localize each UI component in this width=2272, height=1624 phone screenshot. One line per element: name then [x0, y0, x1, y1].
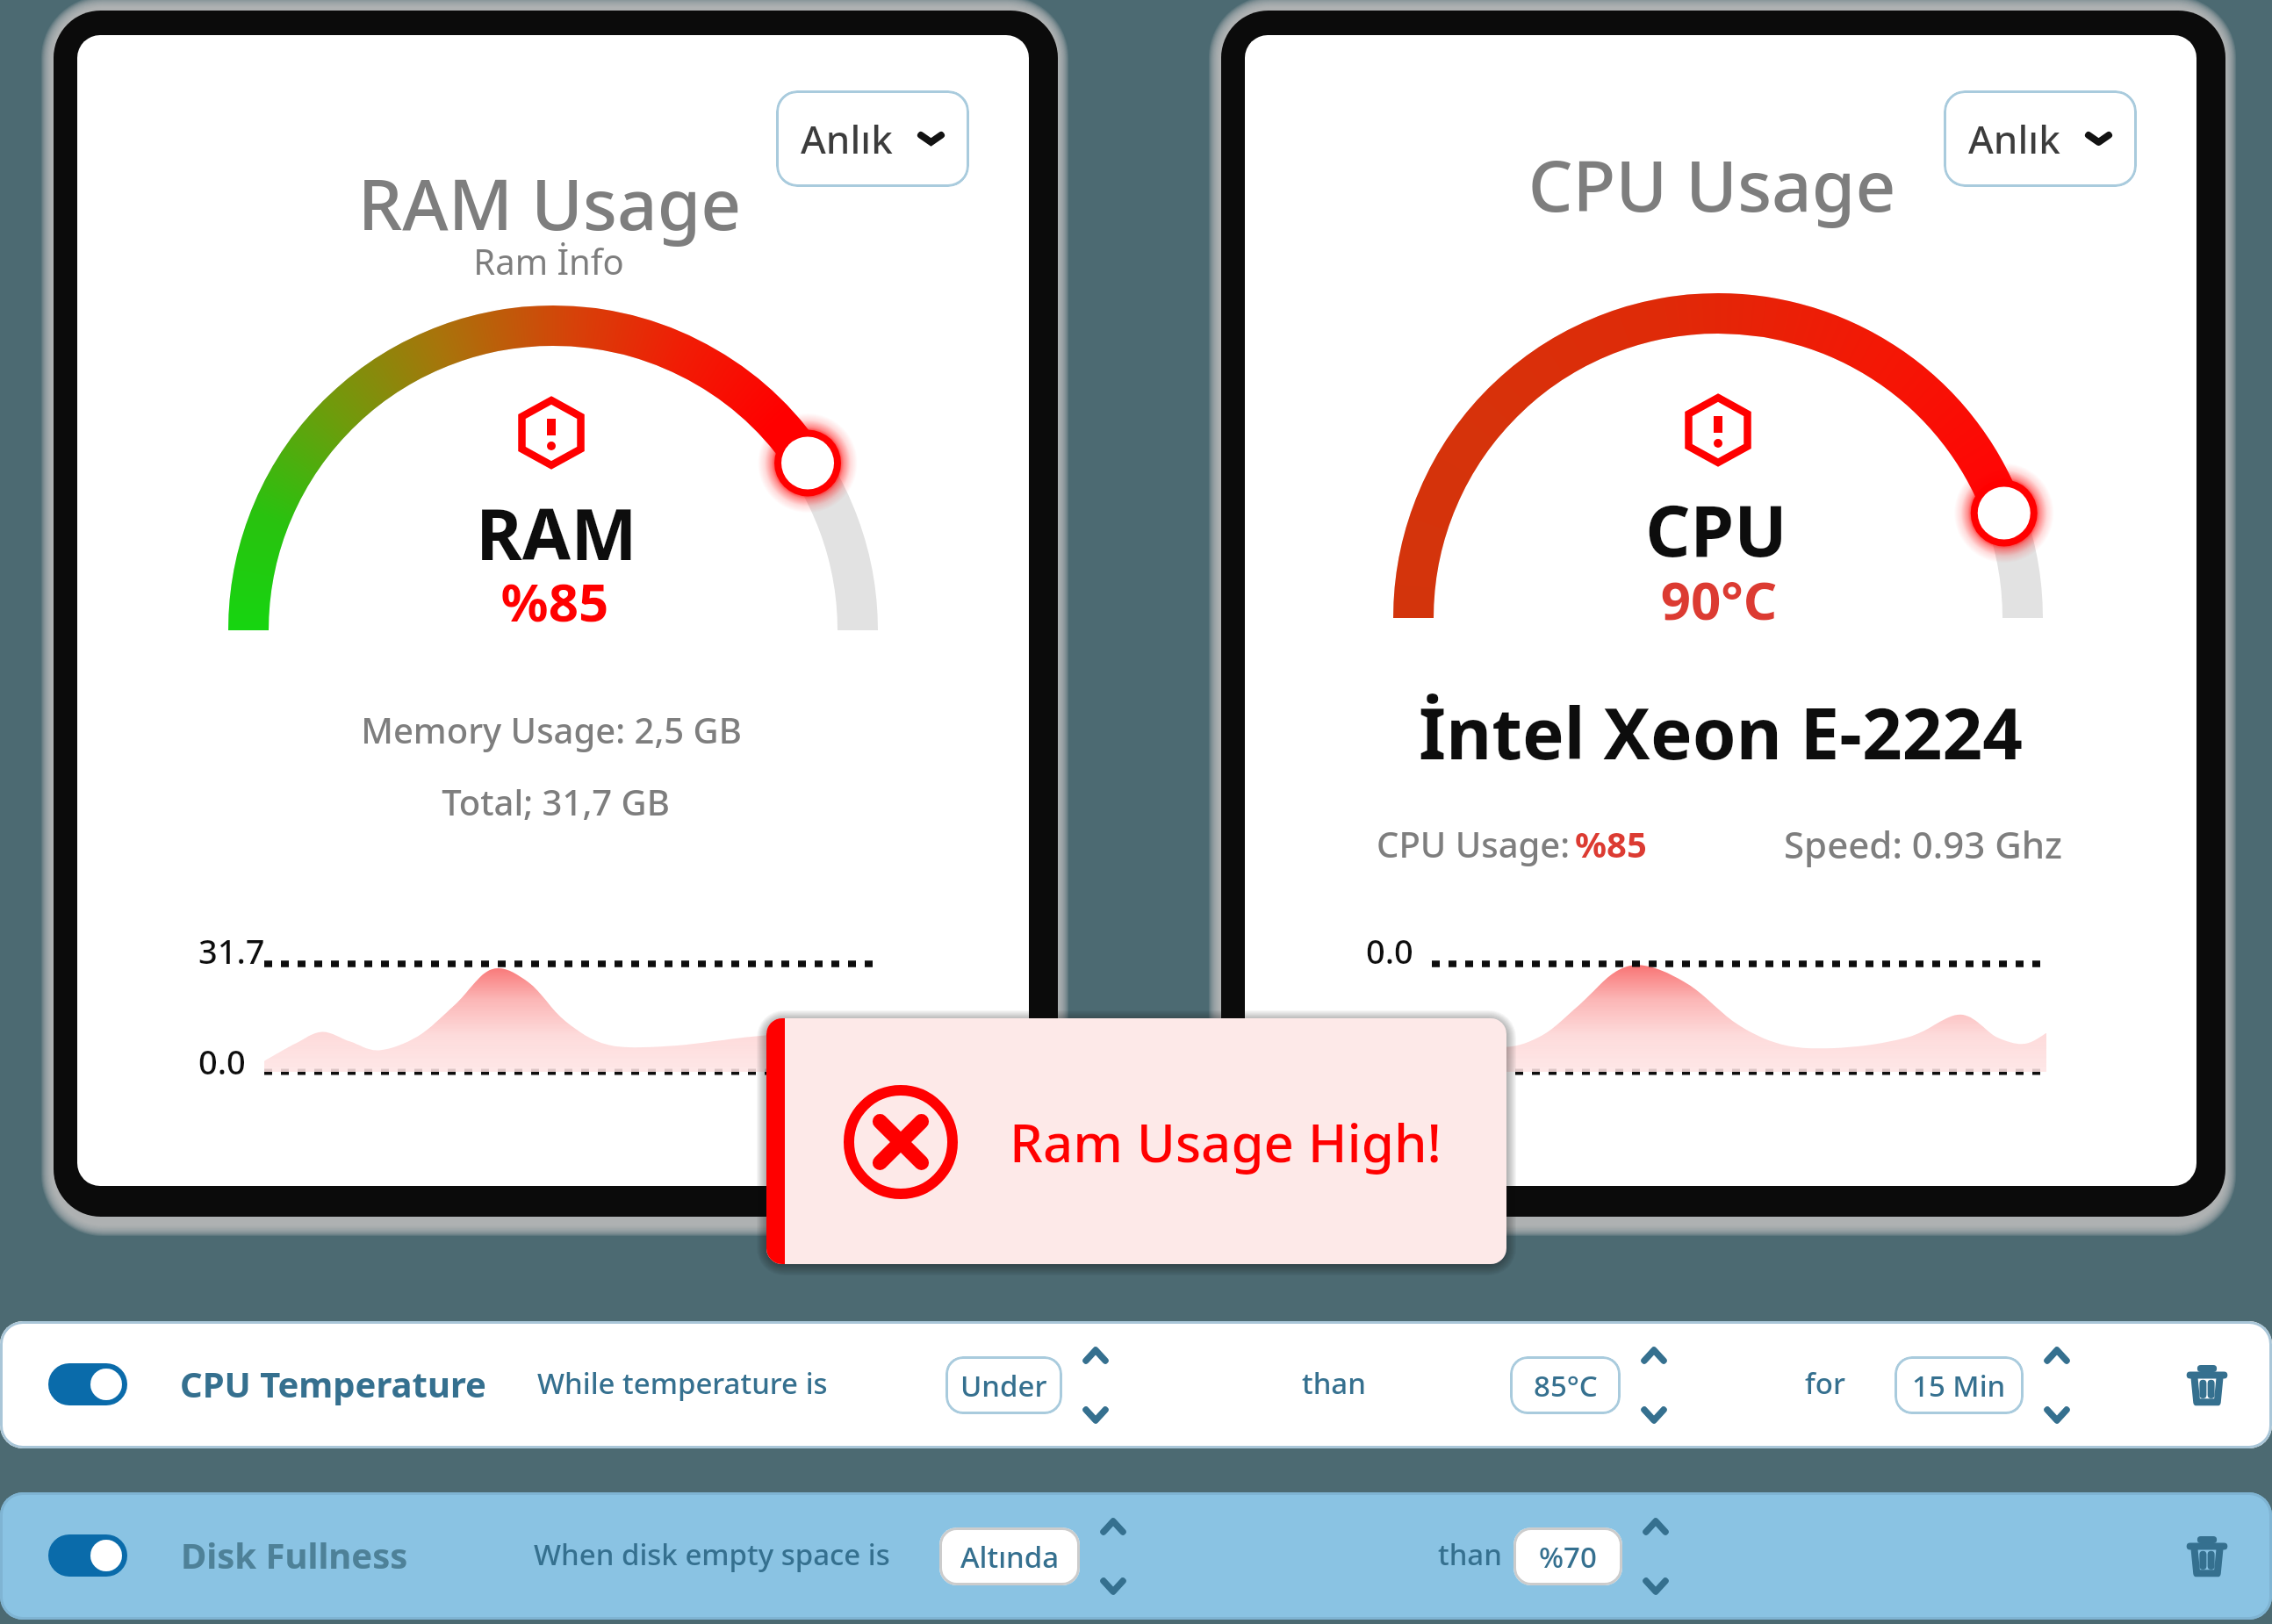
- button[interactable]: Ram Usage High!: [766, 1018, 1506, 1264]
- staticText: Under: [960, 1366, 1047, 1405]
- button[interactable]: Decrease 15 Min: [2040, 1400, 2074, 1430]
- button[interactable]: Toggle CPU Temperature: [48, 1363, 127, 1405]
- staticText: %85: [1575, 820, 1647, 867]
- staticText: Anlık: [1968, 112, 2060, 165]
- staticText: 90°C: [1262, 564, 2175, 636]
- staticText: 31.7: [198, 928, 265, 974]
- button[interactable]: Delete rule: [2178, 1356, 2236, 1414]
- staticText: Ram Usage High!: [1010, 1106, 1442, 1178]
- button[interactable]: Decrease 85°C: [1637, 1400, 1671, 1430]
- button[interactable]: Decrease Altında: [1096, 1571, 1130, 1601]
- button[interactable]: %70: [1513, 1527, 1622, 1585]
- button[interactable]: Decrease Under: [1079, 1400, 1112, 1430]
- staticText: 0.0: [198, 1038, 246, 1084]
- staticText: 15 Min: [1912, 1366, 2006, 1405]
- staticText: Ram İnfo: [92, 237, 1005, 284]
- button[interactable]: Increase Under: [1079, 1340, 1112, 1370]
- staticText: Memory Usage: 2,5 GB: [95, 706, 1008, 753]
- button[interactable]: Increase 15 Min: [2040, 1340, 2074, 1370]
- staticText: While temperature is: [537, 1363, 828, 1403]
- button[interactable]: 85°C: [1510, 1356, 1621, 1414]
- button[interactable]: Increase Altında: [1096, 1512, 1130, 1541]
- button[interactable]: Anlık time range: [776, 90, 969, 187]
- button[interactable]: Under: [945, 1356, 1062, 1414]
- staticText: Anlık: [801, 112, 893, 165]
- staticText: 0.0: [1366, 928, 1413, 974]
- staticText: for: [1805, 1363, 1845, 1403]
- button[interactable]: Delete rule: [2178, 1527, 2236, 1585]
- staticText: than: [1302, 1363, 1366, 1403]
- button[interactable]: Toggle Disk Fullness: [0, 1492, 2272, 1620]
- staticText: When disk empty space is: [534, 1534, 890, 1574]
- button[interactable]: Increase 85°C: [1637, 1340, 1671, 1370]
- button[interactable]: Toggle Disk Fullness: [48, 1534, 127, 1577]
- button[interactable]: Decrease %70: [1639, 1571, 1672, 1601]
- staticText: %85: [98, 565, 1011, 637]
- staticText: Speed: 0.93 Ghz: [1784, 819, 2063, 869]
- button[interactable]: Anlık time range: [1944, 90, 2137, 187]
- staticText: %70: [1539, 1537, 1597, 1577]
- staticText: than: [1438, 1534, 1502, 1574]
- staticText: 85°C: [1534, 1366, 1598, 1405]
- staticText: Altında: [960, 1537, 1060, 1577]
- button[interactable]: Increase %70: [1639, 1512, 1672, 1541]
- button[interactable]: Altında: [939, 1527, 1080, 1585]
- staticText: CPU Usage: [1255, 136, 2168, 232]
- staticText: RAM: [100, 485, 1013, 580]
- staticText: CPU Temperature: [180, 1360, 486, 1407]
- staticText: CPU: [1260, 481, 2173, 577]
- button[interactable]: Toggle CPU Temperature: [0, 1321, 2272, 1448]
- staticText: CPU Usage:: [1377, 820, 1571, 867]
- staticText: Disk Fullness: [181, 1531, 408, 1578]
- staticText: RAM Usage: [93, 154, 1006, 250]
- staticText: Total; 31,7 GB: [99, 778, 1012, 825]
- button[interactable]: 15 Min: [1895, 1356, 2024, 1414]
- staticText: İntel Xeon E-2224: [1264, 684, 2177, 780]
